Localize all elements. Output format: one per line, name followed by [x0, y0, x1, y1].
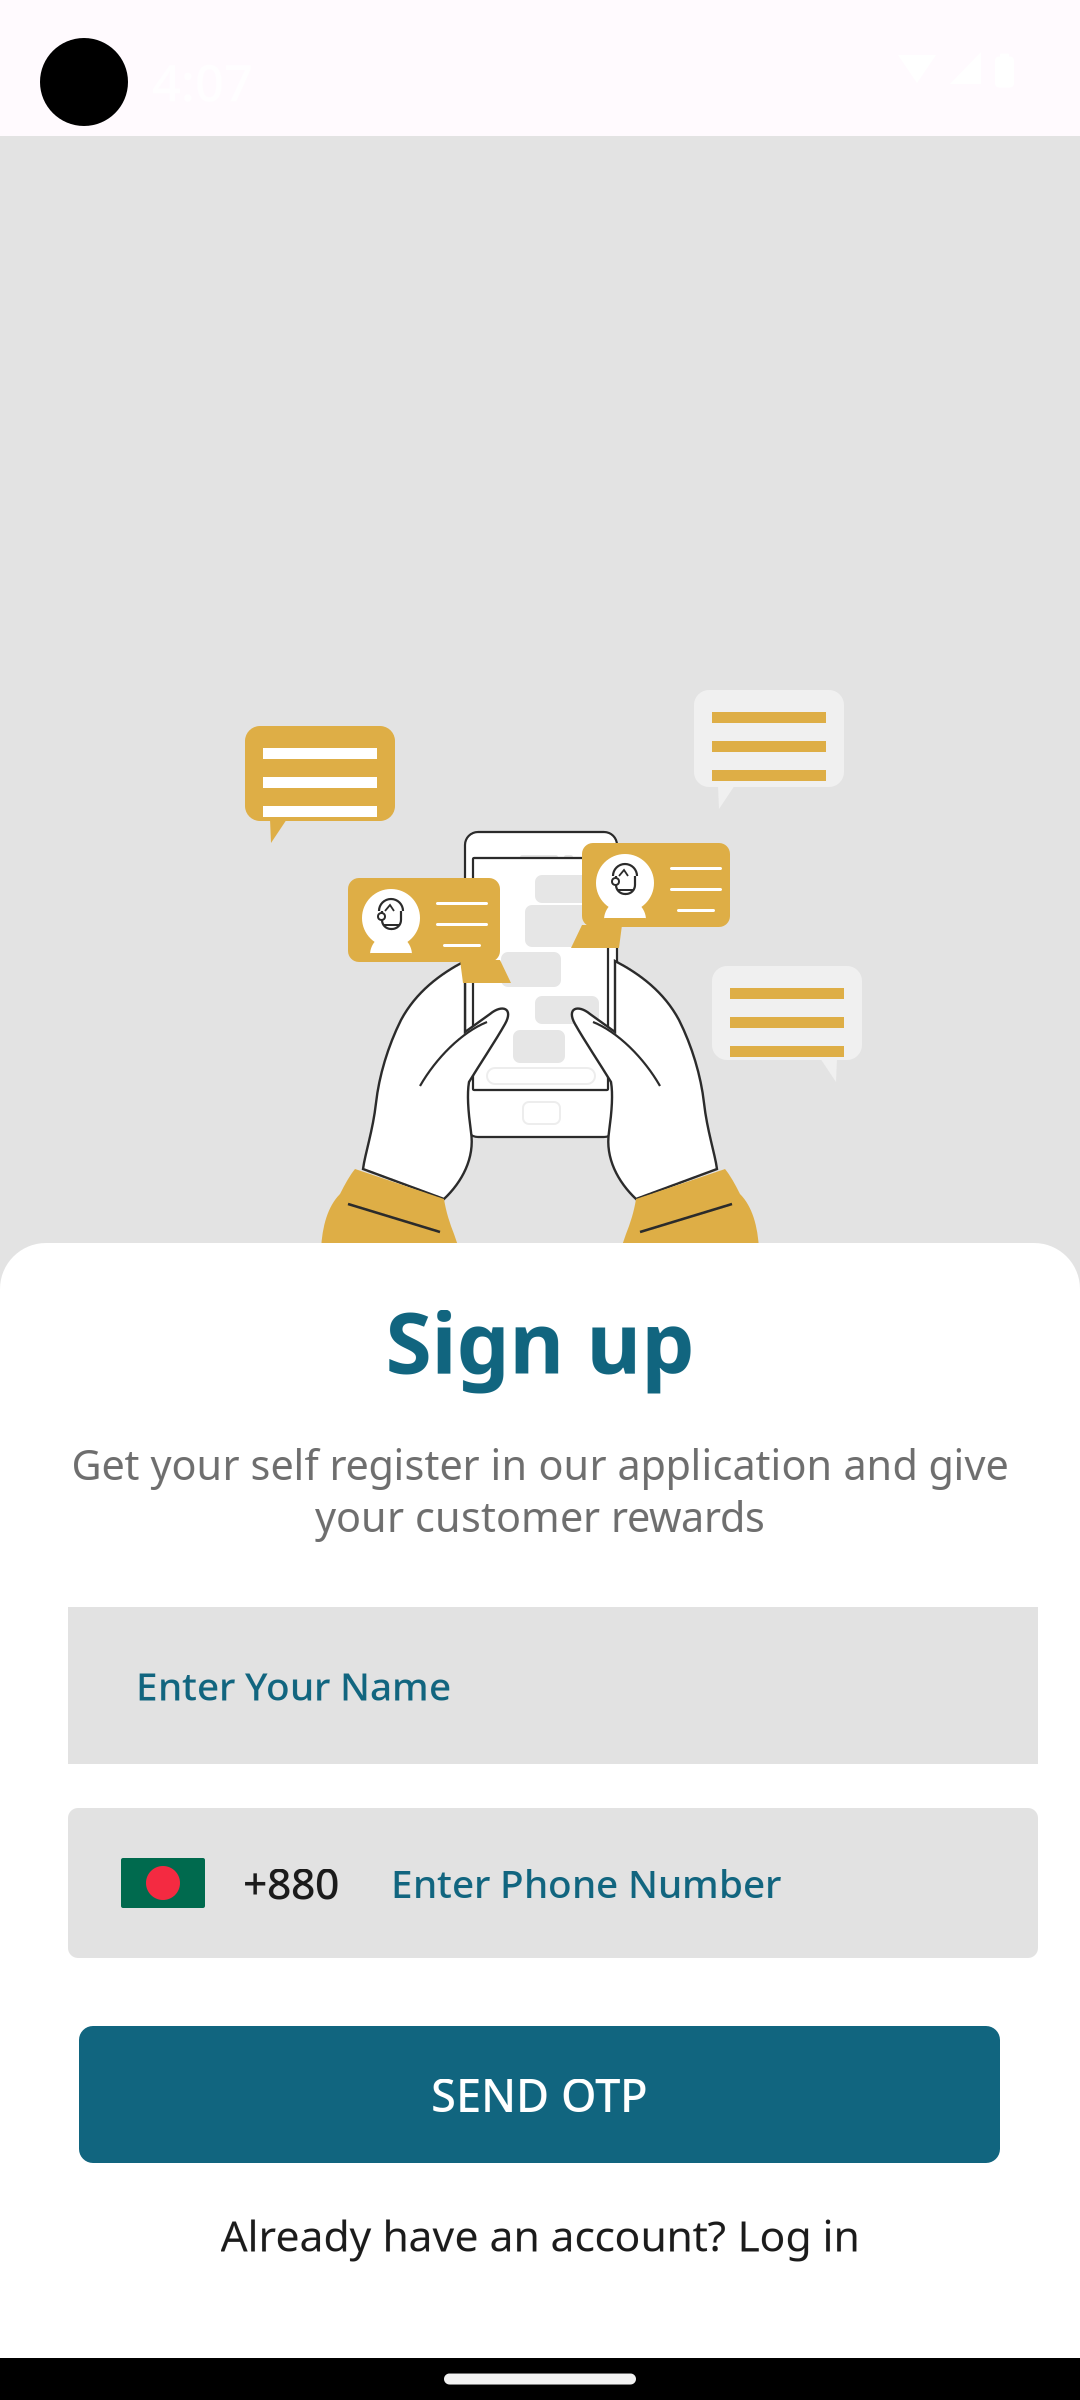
staticText: Already have an account? Log in	[220, 2207, 859, 2263]
staticText: Enter Phone Number	[391, 1857, 781, 1909]
staticText: SEND OTP	[431, 2064, 648, 2125]
staticText: Enter Your Name	[136, 1660, 451, 1711]
staticText: +880	[243, 1855, 339, 1911]
button[interactable]: Already have an account? Log in	[210, 2195, 869, 2275]
button[interactable]: +880	[68, 1808, 1038, 1958]
staticText: Get your self register in our applicatio…	[71, 1437, 1008, 1491]
button[interactable]: Enter Your Name	[68, 1607, 1038, 1764]
button[interactable]: SEND OTP	[79, 2026, 1000, 2163]
staticText: your customer rewards	[315, 1489, 765, 1543]
staticText: Sign up	[385, 1285, 694, 1397]
